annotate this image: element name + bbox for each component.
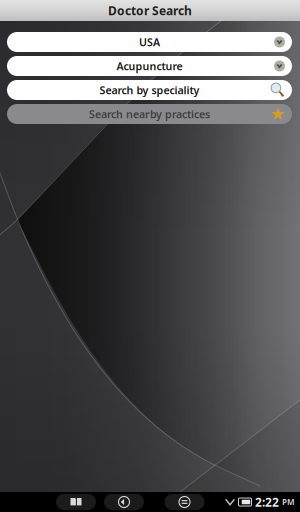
staticText: Acupuncture bbox=[116, 59, 182, 73]
button[interactable]: Back bbox=[104, 494, 144, 510]
button[interactable]: Acupuncture bbox=[7, 56, 292, 76]
staticText: PM bbox=[282, 497, 295, 507]
staticText: Search nearby practices bbox=[89, 107, 210, 121]
button[interactable]: Search by speciality bbox=[7, 80, 292, 100]
staticText: Doctor Search bbox=[108, 2, 192, 18]
button[interactable]: Menu bbox=[164, 494, 204, 510]
button[interactable]: USA bbox=[7, 32, 292, 52]
staticText: 2:22 bbox=[255, 494, 279, 510]
staticText: Search by speciality bbox=[99, 83, 199, 97]
button[interactable]: Recents bbox=[56, 494, 96, 510]
button[interactable]: Search nearby practices bbox=[7, 104, 292, 124]
staticText: USA bbox=[139, 35, 160, 49]
